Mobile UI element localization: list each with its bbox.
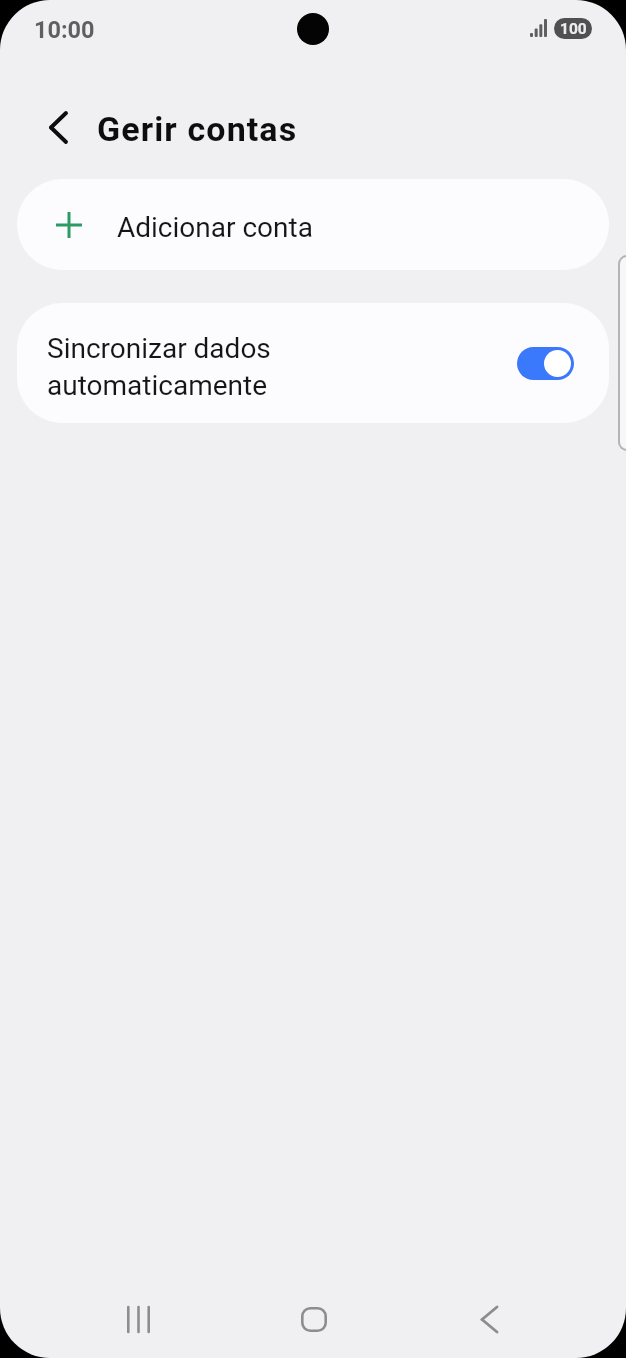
button[interactable]: Sync automatically, on xyxy=(517,347,574,380)
staticText: 10:00 xyxy=(34,16,95,44)
button[interactable]: Recent apps xyxy=(108,1294,168,1344)
button[interactable]: Home xyxy=(284,1294,344,1344)
button[interactable]: Navigate up xyxy=(30,99,86,155)
button[interactable]: Back xyxy=(459,1294,519,1344)
staticText: Sincronizar dados automaticamente xyxy=(47,332,271,402)
button[interactable]: Sincronizar dados automaticamente xyxy=(17,303,609,423)
staticText: Gerir contas xyxy=(97,109,298,149)
staticText: 100 xyxy=(560,20,587,38)
other: Mobile signal xyxy=(530,19,547,37)
staticText: Adicionar conta xyxy=(117,211,313,244)
button[interactable]: Adicionar conta xyxy=(17,179,609,270)
